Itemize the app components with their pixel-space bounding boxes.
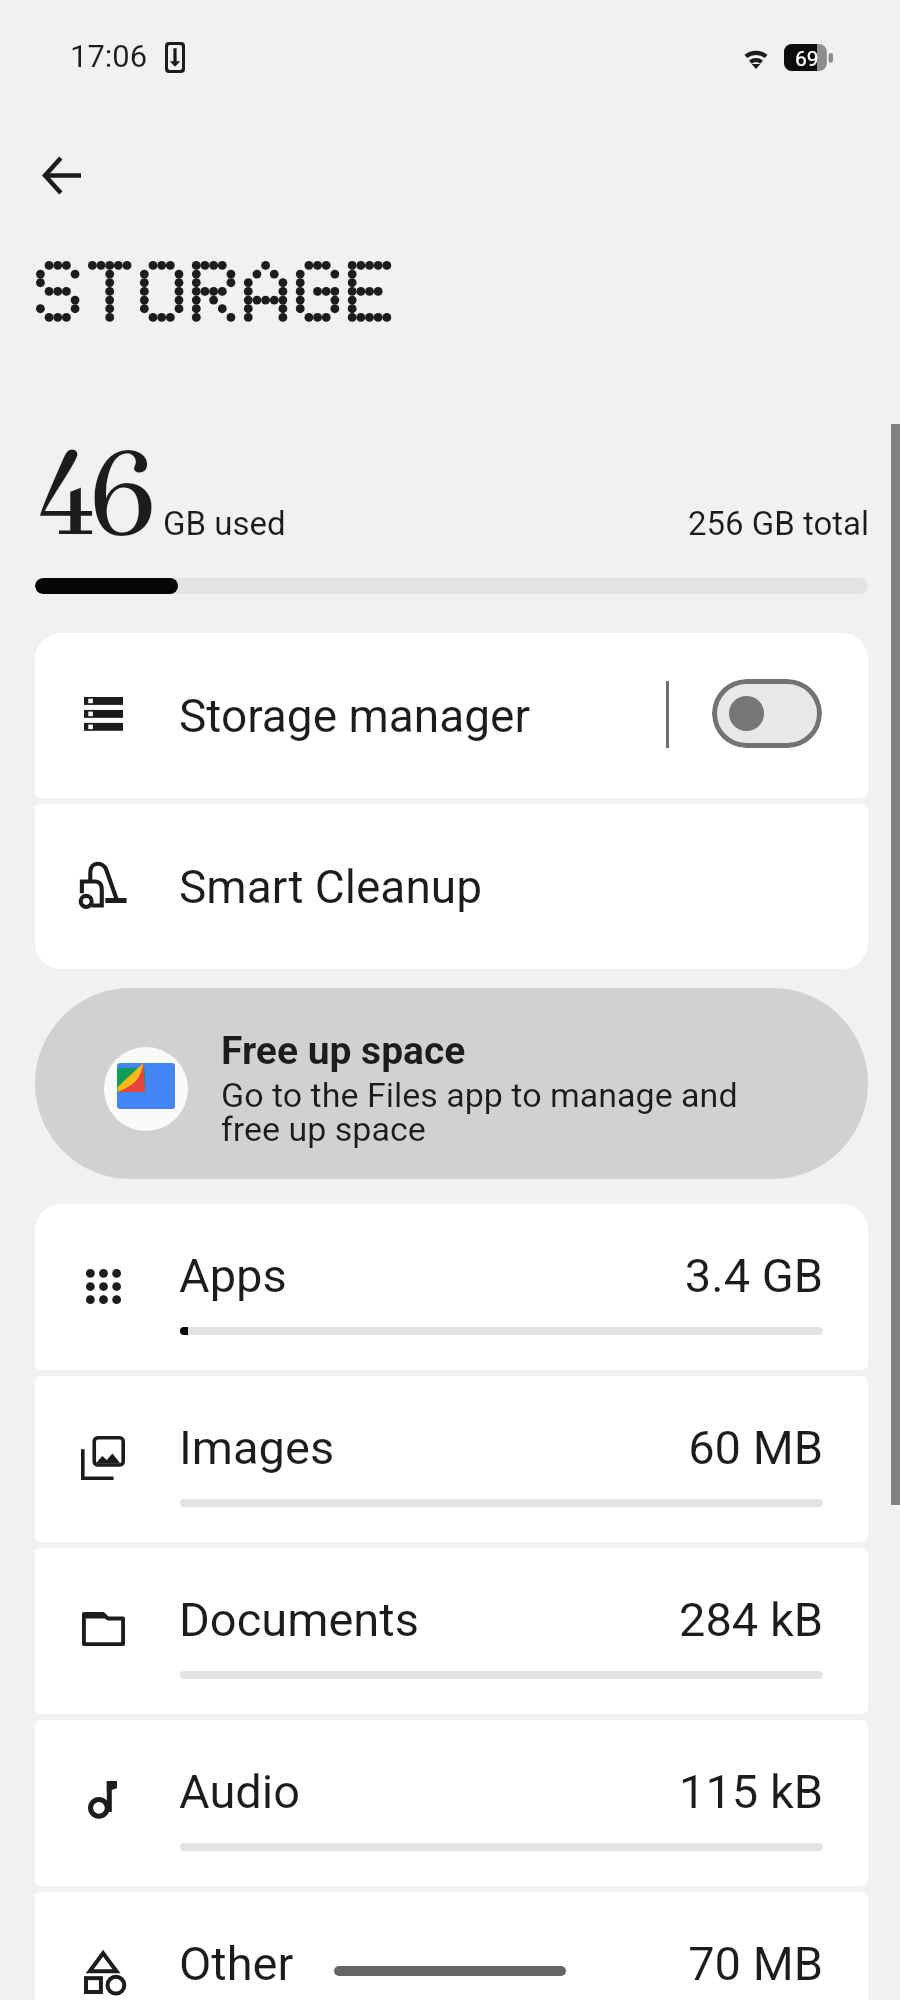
button[interactable]: Images — [35, 1376, 868, 1542]
staticText: 115 kB — [435, 1764, 823, 1819]
button[interactable]: Audio — [35, 1720, 868, 1886]
staticText: 70 MB — [435, 1936, 823, 1991]
staticText: GB used — [163, 504, 286, 543]
button[interactable]: Apps — [35, 1204, 868, 1370]
staticText: Free up space — [221, 1028, 466, 1074]
button[interactable]: Free up space — [35, 988, 868, 1179]
staticText: 60 MB — [435, 1420, 823, 1475]
staticText: Apps — [179, 1248, 287, 1303]
staticText: Other — [179, 1936, 294, 1991]
staticText: 46 — [33, 421, 148, 567]
staticText: 256 GB total — [500, 504, 869, 543]
button[interactable]: Storage manager switch — [712, 679, 822, 748]
staticText: Audio — [179, 1764, 301, 1819]
staticText: Images — [179, 1420, 335, 1475]
button[interactable]: Back — [25, 137, 101, 213]
button[interactable]: Smart Cleanup — [35, 804, 868, 969]
staticText: Storage manager — [179, 689, 531, 743]
staticText: Go to the Files app to manage and free u… — [221, 1075, 786, 1149]
button[interactable]: Other — [35, 1892, 868, 2000]
staticText: 69 — [795, 47, 819, 72]
staticText: Documents — [179, 1592, 419, 1647]
staticText: Smart Cleanup — [179, 860, 482, 914]
button[interactable]: Storage manager — [35, 633, 868, 798]
staticText: 3.4 GB — [435, 1248, 823, 1303]
button[interactable]: Documents — [35, 1548, 868, 1714]
staticText: 17:06 — [70, 38, 148, 74]
staticText: 284 kB — [435, 1592, 823, 1647]
